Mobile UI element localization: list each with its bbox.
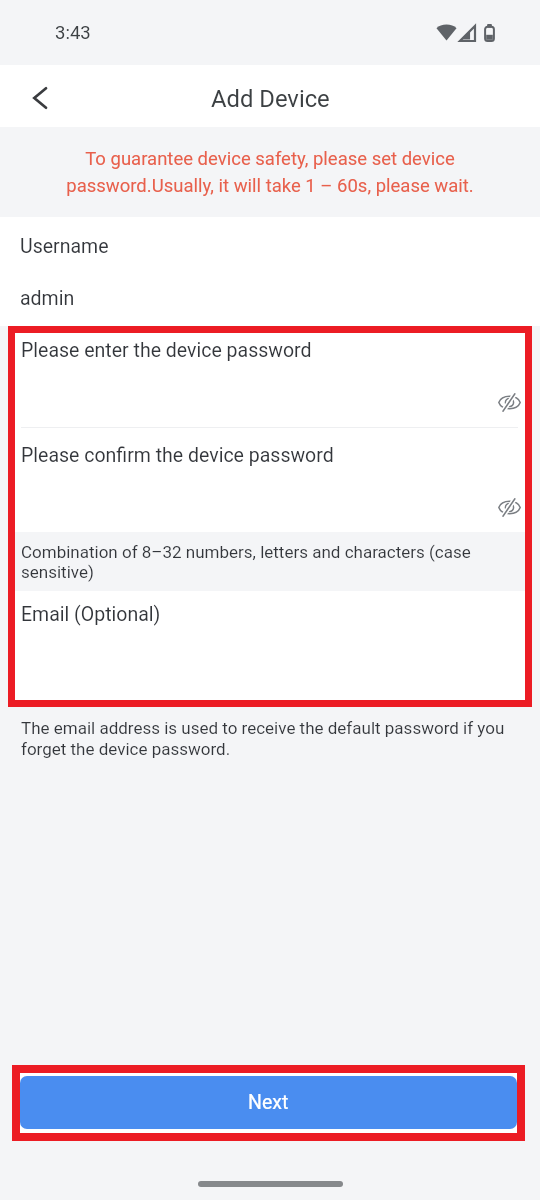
button[interactable]: Show password (493, 491, 525, 523)
button[interactable]: Please enter the device password (15, 333, 525, 427)
button[interactable]: Show password (493, 386, 525, 418)
staticText: Please enter the device password (21, 339, 312, 362)
staticText: admin (20, 287, 75, 310)
button[interactable]: Back (0, 65, 62, 127)
button[interactable]: Please confirm the device password (15, 428, 525, 532)
staticText: Next (248, 1091, 289, 1114)
staticText: The email address is used to receive the… (21, 718, 524, 759)
staticText: Username (20, 235, 109, 258)
staticText: Email (Optional) (21, 603, 161, 626)
button[interactable]: Next (20, 1076, 517, 1129)
button[interactable]: Email (Optional) (15, 591, 525, 699)
staticText: 3:43 (55, 22, 91, 44)
staticText: Please confirm the device password (21, 444, 334, 467)
staticText: To guarantee device safety, please set d… (28, 148, 512, 196)
staticText: Add Device (211, 85, 330, 113)
staticText: Combination of 8–32 numbers, letters and… (21, 542, 493, 582)
